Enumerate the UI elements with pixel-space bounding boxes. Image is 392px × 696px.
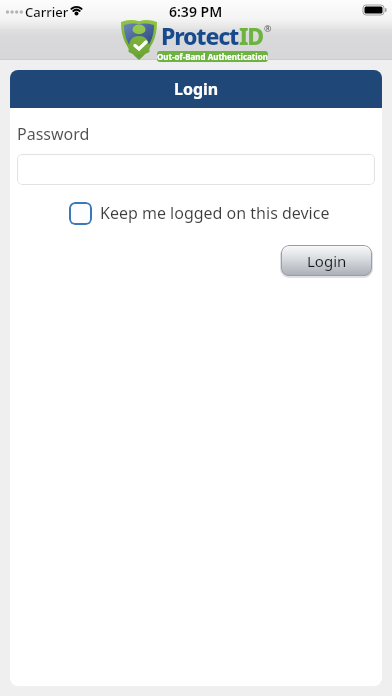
- staticText: Password: [17, 123, 90, 145]
- button[interactable]: [69, 202, 92, 225]
- staticText: Out-of-Band Authentication: [157, 51, 268, 62]
- button[interactable]: Keep me logged on this device: [100, 199, 330, 227]
- staticText: 6:39 PM: [169, 2, 223, 21]
- button[interactable]: Login: [281, 245, 372, 276]
- staticText: Protect: [161, 20, 239, 51]
- staticText: Login: [174, 78, 219, 100]
- staticText: Login: [307, 251, 347, 271]
- button[interactable]: [17, 154, 375, 185]
- staticText: ®: [264, 22, 272, 34]
- staticText: Carrier: [25, 3, 69, 21]
- staticText: Keep me logged on this device: [100, 202, 330, 224]
- staticText: ID: [239, 20, 263, 51]
